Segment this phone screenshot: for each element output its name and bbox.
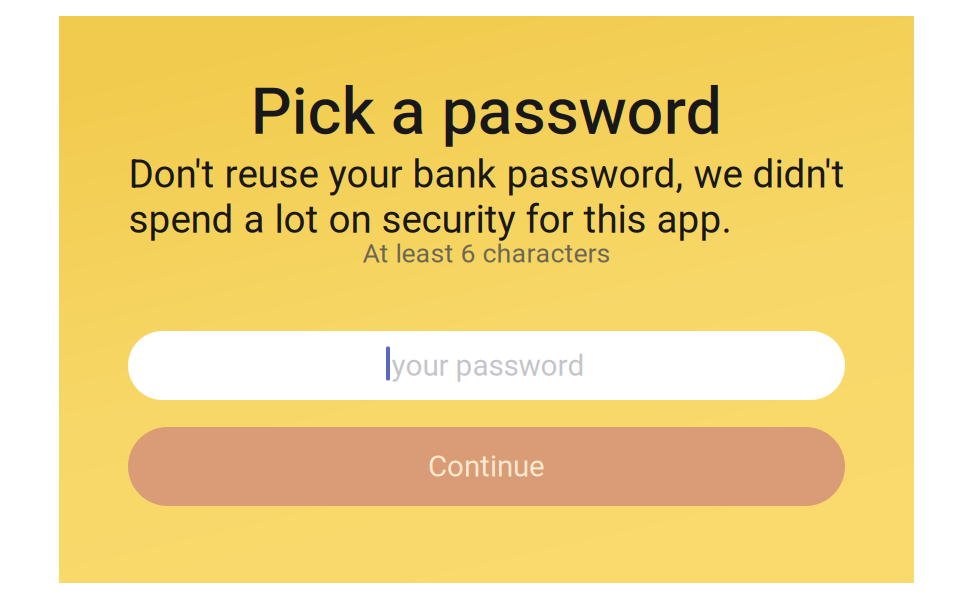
staticText: At least 6 characters [362, 238, 610, 269]
button[interactable]: your password [128, 331, 845, 400]
staticText: your password [391, 348, 584, 383]
staticText: Don't reuse your bank password, we didn'… [128, 152, 844, 242]
staticText: Continue [428, 449, 545, 484]
staticText: Pick a password [250, 73, 722, 149]
button[interactable]: Continue [128, 427, 845, 506]
